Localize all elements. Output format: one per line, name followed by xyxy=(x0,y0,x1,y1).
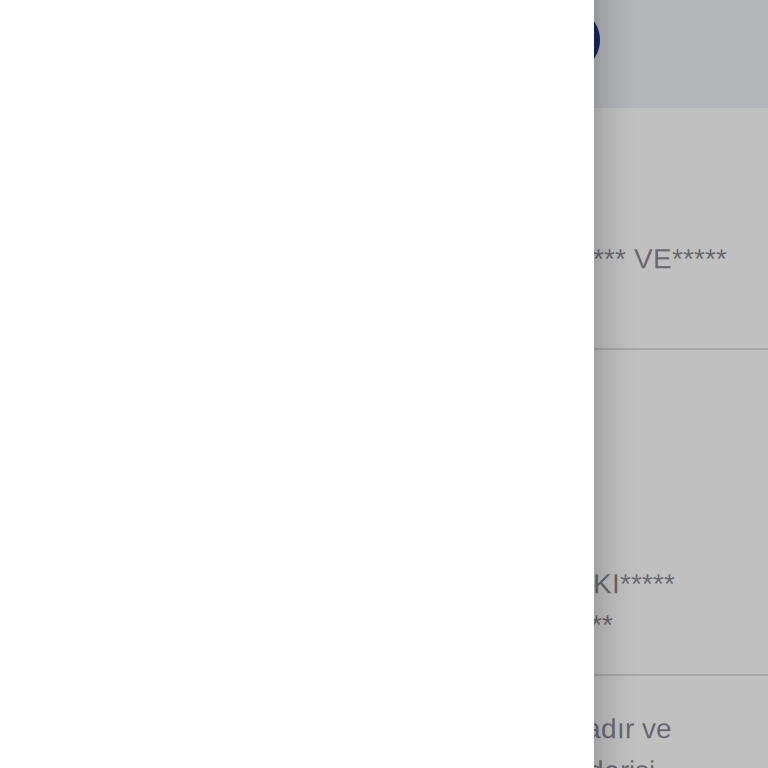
staticText: teslimat durumu için anlaşmalı kargonun … xyxy=(25,755,655,768)
staticText: HESAP SAHİBİ : MEHMET*** VE***** xyxy=(252,243,727,274)
staticText: TOPLAM HESAP BAKİYESİ ** xyxy=(226,609,613,640)
button[interactable]: Profile xyxy=(536,8,600,72)
staticText: Kartınızın teslimatı kargo şirketi ile y… xyxy=(25,713,672,744)
staticText: KULLANILABİLİR BAKI***** xyxy=(323,568,675,599)
